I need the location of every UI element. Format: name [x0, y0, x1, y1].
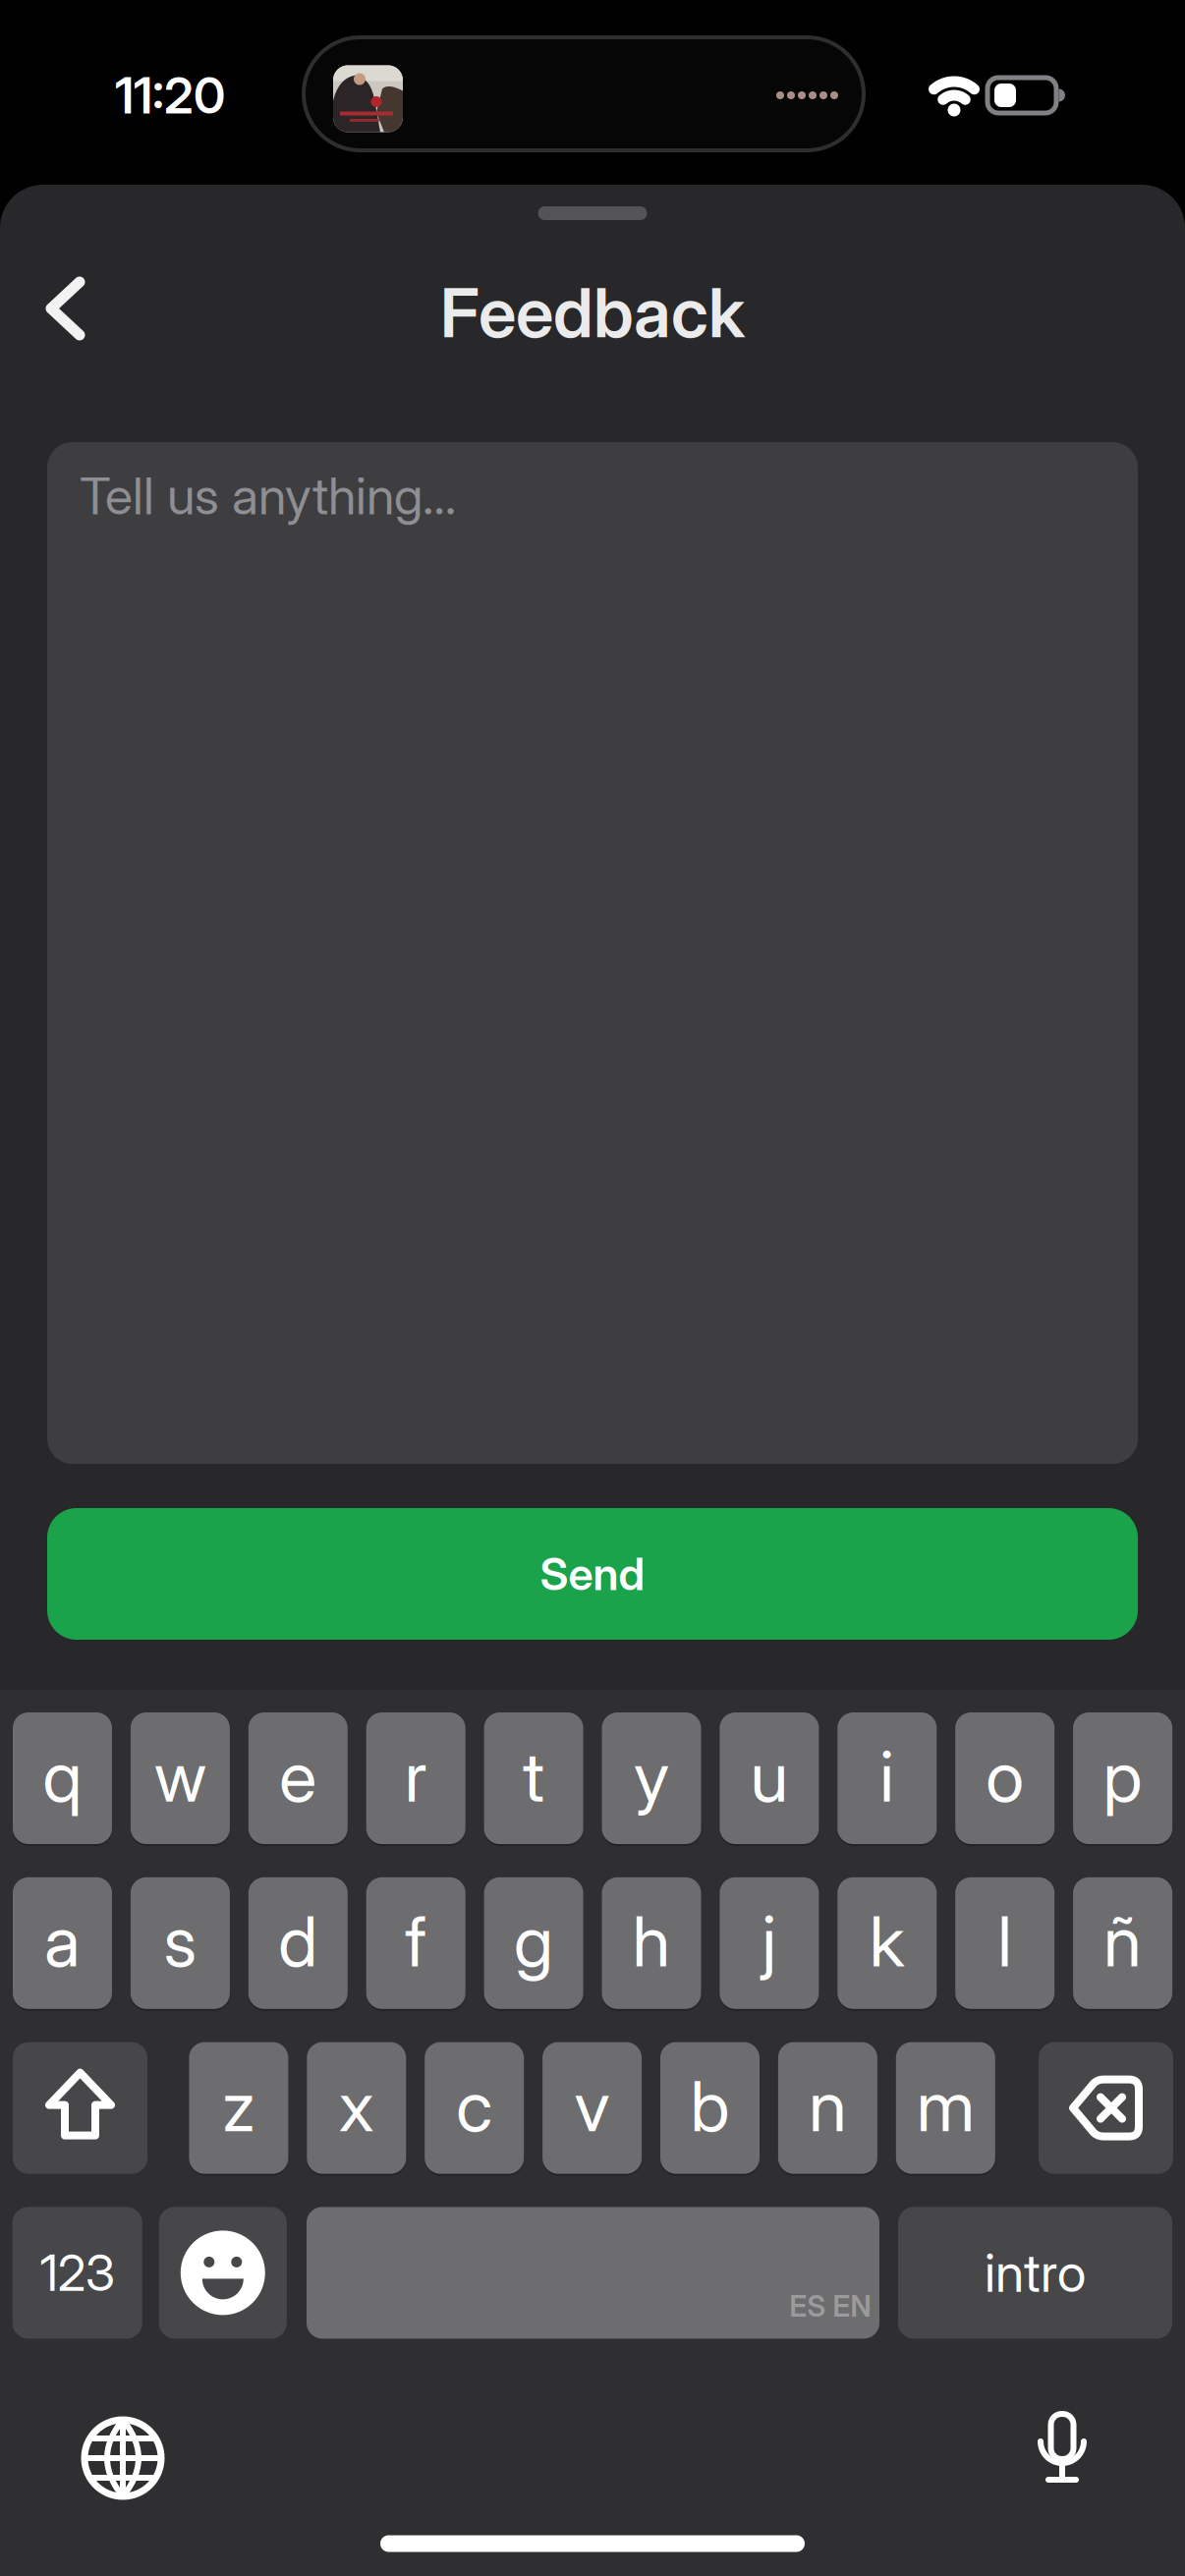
staticText: r — [405, 1735, 427, 1817]
button[interactable]: w — [131, 1712, 230, 1844]
button[interactable]: v — [542, 2042, 642, 2174]
staticText: k — [869, 1900, 905, 1982]
staticText: Tell us anything… — [80, 466, 456, 526]
staticText: j — [762, 1900, 777, 1982]
staticText: z — [222, 2065, 255, 2147]
button[interactable]: l — [955, 1877, 1055, 2009]
button[interactable]: t — [484, 1712, 583, 1844]
staticText: e — [279, 1735, 317, 1817]
staticText: b — [690, 2065, 730, 2147]
button[interactable]: x — [307, 2042, 406, 2174]
button[interactable]: d — [248, 1877, 348, 2009]
staticText: w — [154, 1735, 206, 1817]
button[interactable]: u — [720, 1712, 819, 1844]
button[interactable]: e — [248, 1712, 348, 1844]
button[interactable]: ES EN — [307, 2207, 879, 2339]
staticText: c — [456, 2065, 492, 2147]
staticText: d — [278, 1900, 318, 1982]
button[interactable]: k — [837, 1877, 937, 2009]
staticText: n — [809, 2065, 847, 2147]
staticText: v — [574, 2065, 610, 2147]
button[interactable] — [74, 2409, 172, 2507]
staticText: Feedback — [440, 272, 745, 353]
button[interactable]: n — [778, 2042, 877, 2174]
staticText: m — [917, 2065, 975, 2147]
staticText: l — [998, 1900, 1012, 1982]
button[interactable]: i — [837, 1712, 937, 1844]
staticText: u — [750, 1735, 788, 1817]
staticText: i — [880, 1735, 894, 1817]
button[interactable] — [1039, 2042, 1173, 2174]
staticText: h — [632, 1900, 671, 1982]
button[interactable]: m — [896, 2042, 995, 2174]
staticText: y — [634, 1735, 669, 1817]
button[interactable]: p — [1073, 1712, 1172, 1844]
staticText: p — [1103, 1735, 1142, 1817]
button[interactable]: y — [602, 1712, 701, 1844]
button[interactable]: j — [720, 1877, 819, 2009]
staticText: ñ — [1104, 1900, 1142, 1982]
staticText: g — [514, 1900, 553, 1982]
button[interactable]: g — [484, 1877, 583, 2009]
staticText: x — [339, 2065, 374, 2147]
button[interactable]: h — [602, 1877, 701, 2009]
staticText: q — [43, 1735, 82, 1817]
button[interactable]: Send — [47, 1508, 1138, 1640]
button[interactable]: q — [13, 1712, 112, 1844]
button[interactable]: intro — [898, 2207, 1172, 2339]
button[interactable]: a — [13, 1877, 112, 2009]
button[interactable] — [26, 264, 104, 353]
button[interactable]: o — [955, 1712, 1055, 1844]
button[interactable]: f — [366, 1877, 465, 2009]
button[interactable] — [13, 2042, 147, 2174]
staticText: a — [44, 1900, 81, 1982]
button[interactable]: r — [366, 1712, 465, 1844]
staticText: Send — [540, 1548, 645, 1600]
staticText: t — [523, 1735, 544, 1817]
button[interactable] — [159, 2207, 287, 2339]
button[interactable]: z — [189, 2042, 288, 2174]
staticText: s — [164, 1900, 197, 1982]
staticText: f — [405, 1900, 427, 1982]
button[interactable]: Tell us anything… — [47, 442, 1138, 1464]
staticText: intro — [985, 2242, 1086, 2304]
staticText: 11:20 — [115, 66, 225, 125]
staticText: 123 — [40, 2243, 115, 2302]
staticText: o — [986, 1735, 1024, 1817]
staticText: ES EN — [790, 2289, 871, 2323]
button[interactable]: s — [131, 1877, 230, 2009]
button[interactable] — [1018, 2409, 1106, 2507]
button[interactable]: 123 — [12, 2207, 142, 2339]
button[interactable]: b — [660, 2042, 760, 2174]
button[interactable]: ñ — [1073, 1877, 1172, 2009]
button[interactable]: c — [425, 2042, 524, 2174]
